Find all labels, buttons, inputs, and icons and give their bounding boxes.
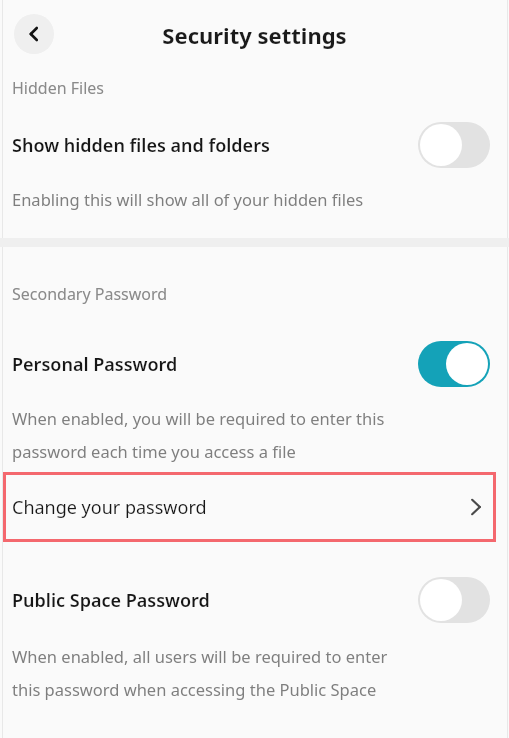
staticText: When enabled, you will be required to en… <box>12 407 385 429</box>
button[interactable]: Back <box>14 14 54 54</box>
staticText: When enabled, all users will be required… <box>12 645 388 667</box>
button[interactable]: Off <box>418 122 490 168</box>
staticText: Enabling this will show all of your hidd… <box>12 188 364 210</box>
staticText: Secondary Password <box>12 283 168 305</box>
staticText: Show hidden files and folders <box>12 133 270 158</box>
button[interactable]: Off <box>418 577 490 623</box>
staticText: Security settings <box>0 20 509 50</box>
staticText: Hidden Files <box>12 77 104 99</box>
button[interactable]: Public Space Password <box>0 568 509 632</box>
button[interactable]: Personal Password <box>0 332 509 396</box>
button[interactable]: Show hidden files and folders <box>0 112 509 178</box>
staticText: Public Space Password <box>12 588 210 613</box>
button[interactable]: Change your password <box>3 472 496 542</box>
staticText: password each time you access a file <box>12 440 296 462</box>
staticText: Personal Password <box>12 352 178 377</box>
button[interactable]: On <box>418 341 490 387</box>
staticText: this password when accessing the Public … <box>12 678 377 700</box>
staticText: Change your password <box>12 495 207 520</box>
